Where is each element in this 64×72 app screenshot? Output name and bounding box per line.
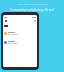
button[interactable] bbox=[3, 31, 37, 35]
button[interactable]: Menu bbox=[4, 19, 7, 22]
button[interactable]: Profile bbox=[33, 19, 36, 22]
staticText: Consectetur adipiscing elit sed bbox=[10, 8, 54, 12]
staticText: lorem ipsum dolor sit amet elit bbox=[17, 3, 48, 6]
button[interactable] bbox=[3, 40, 37, 44]
